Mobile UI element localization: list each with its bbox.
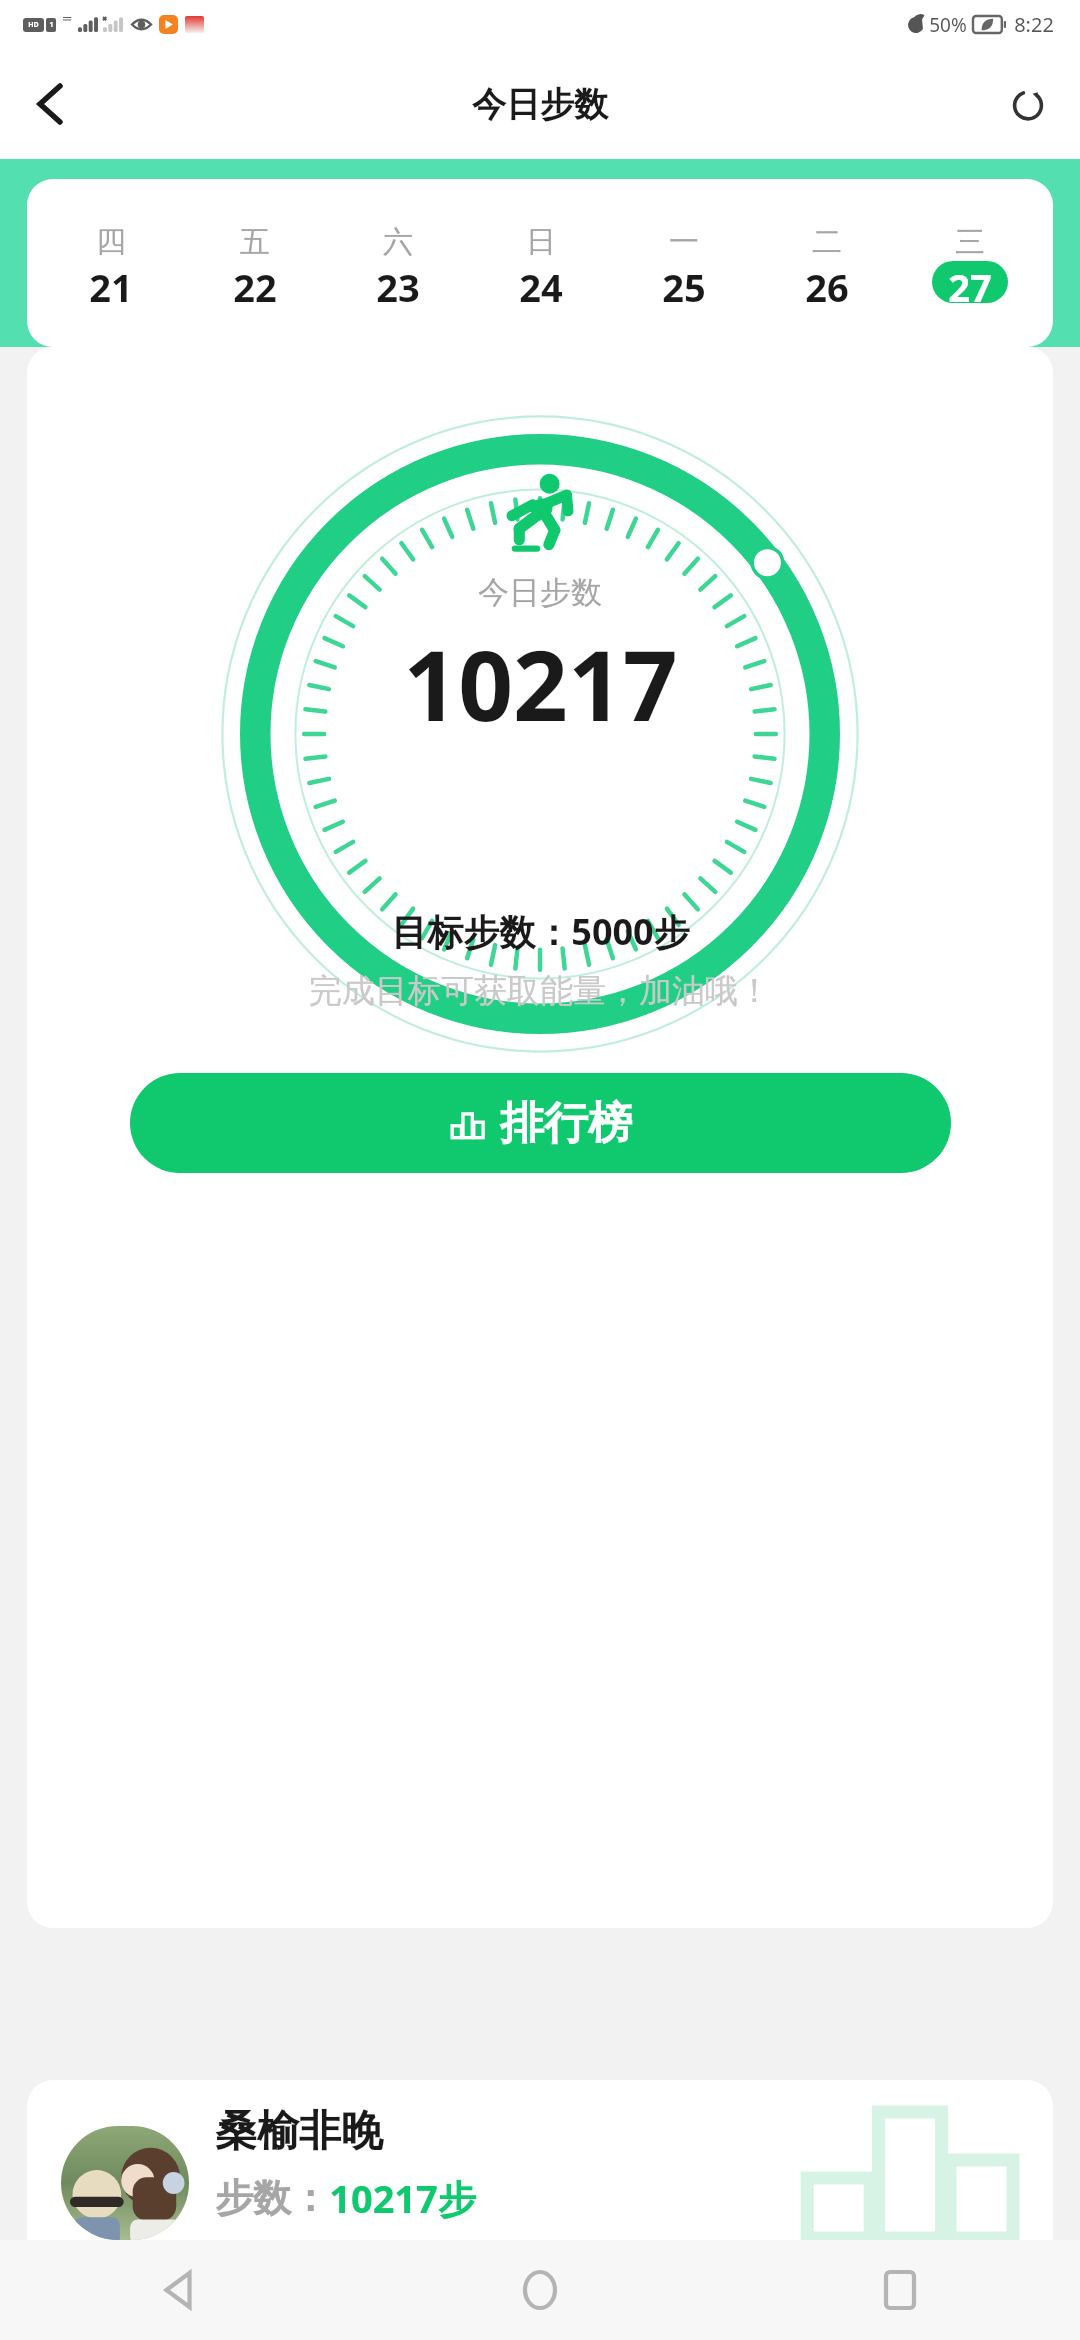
staticText: 1 [49, 20, 54, 30]
staticText: 六 [383, 223, 413, 261]
staticText: 日 [526, 223, 556, 261]
staticText: 8:22 [1014, 11, 1054, 38]
staticText: 三 [955, 223, 985, 261]
button[interactable]: 25 [612, 261, 755, 303]
staticText: 21 [89, 261, 133, 303]
staticText: 桑榆非晚 [215, 2105, 383, 2158]
staticText: 27 [948, 261, 992, 303]
button[interactable]: Back [0, 2240, 360, 2340]
staticText: 四 [96, 223, 126, 261]
button[interactable]: 21 [39, 261, 183, 303]
staticText: 目标步数：5000步 [391, 907, 690, 956]
button[interactable]: Recents [720, 2240, 1080, 2340]
staticText: 五 [240, 223, 270, 261]
staticText: 24 [519, 261, 563, 303]
button[interactable]: 26 [755, 261, 898, 303]
button[interactable]: 27 [898, 261, 1041, 303]
staticText: 二 [812, 223, 842, 261]
staticText: 10217 [403, 618, 678, 749]
button[interactable]: 排行榜 [130, 1073, 951, 1173]
staticText: 今日步数 [472, 83, 608, 126]
button[interactable]: 桑榆非晚 [27, 2080, 1053, 2240]
staticText: 今日步数 [478, 573, 602, 612]
staticText: 26 [805, 261, 849, 303]
button[interactable]: Back [18, 72, 82, 136]
staticText: 22 [233, 261, 277, 303]
button[interactable]: Share [996, 72, 1060, 136]
staticText: 步数： [215, 2174, 329, 2222]
button[interactable]: Home [360, 2240, 720, 2340]
button[interactable]: 23 [326, 261, 469, 303]
staticText: 排行榜 [500, 1096, 632, 1151]
staticText: 25 [662, 261, 706, 303]
staticText: 10217步 [329, 2172, 476, 2224]
staticText: 23 [376, 261, 420, 303]
staticText: 完成目标可获取能量，加油哦！ [309, 970, 771, 1012]
staticText: 一 [669, 223, 699, 261]
button[interactable]: 24 [469, 261, 612, 303]
button[interactable]: 22 [183, 261, 326, 303]
staticText: HD [28, 20, 39, 30]
staticText: 50% [929, 12, 967, 38]
